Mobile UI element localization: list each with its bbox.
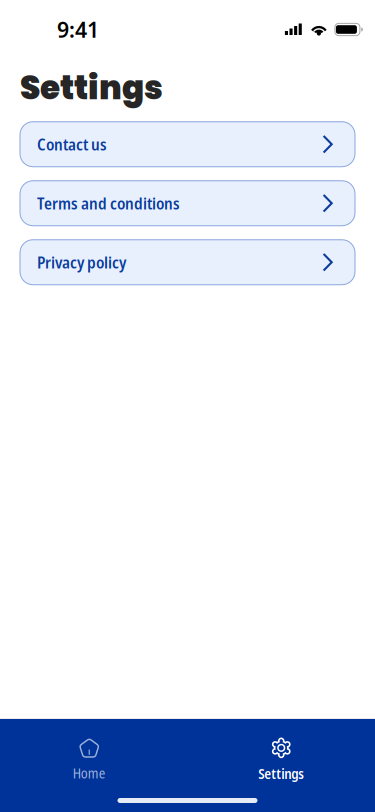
staticText: Privacy policy [37, 251, 126, 273]
staticText: 9:41 [57, 15, 99, 44]
staticText: Contact us [37, 133, 107, 155]
button[interactable]: Terms and conditions [20, 181, 355, 226]
staticText: Home [73, 763, 106, 783]
button[interactable]: Privacy policy [20, 240, 355, 285]
button[interactable]: Settings [187, 731, 375, 789]
staticText: Settings [258, 764, 304, 783]
staticText: Terms and conditions [37, 192, 180, 214]
button[interactable]: Contact us [20, 122, 355, 167]
staticText: Settings [20, 65, 163, 111]
button[interactable]: Home [0, 731, 178, 789]
